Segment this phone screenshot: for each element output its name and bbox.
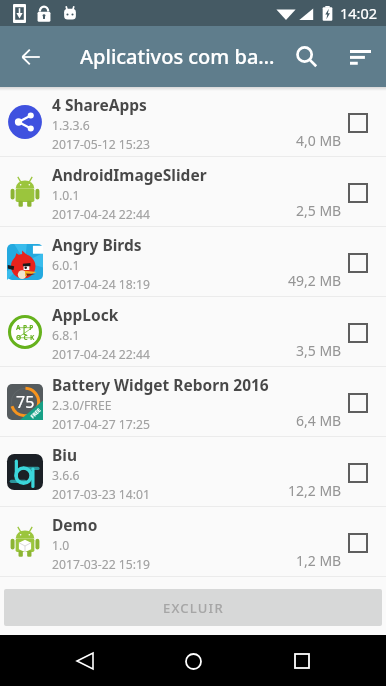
staticText: AppLock — [52, 304, 119, 325]
button[interactable]: Back — [61, 637, 109, 685]
staticText: EXCLUIR — [163, 599, 224, 617]
staticText: 1.0 — [52, 537, 70, 554]
staticText: 2017-05-12 15:23 — [52, 136, 150, 153]
staticText: 2017-04-24 22:44 — [52, 206, 150, 223]
staticText: 4 ShareApps — [52, 94, 147, 115]
staticText: Demo — [52, 514, 98, 535]
staticText: 2017-03-23 14:01 — [52, 486, 150, 503]
button[interactable]: 4 ShareApps — [0, 87, 386, 156]
button[interactable]: EXCLUIR — [4, 589, 382, 626]
staticText: 1,2 MB — [296, 551, 342, 570]
staticText: 12,2 MB — [288, 481, 342, 500]
button[interactable]: Select app — [348, 323, 368, 343]
button[interactable]: Select app — [348, 533, 368, 553]
button[interactable]: Select app — [348, 463, 368, 483]
staticText: OCK — [16, 333, 37, 342]
button[interactable]: Sort — [340, 37, 380, 77]
button[interactable]: APP — [0, 297, 386, 366]
staticText: 2017-04-24 22:44 — [52, 346, 150, 363]
staticText: Aplicativos com ba… — [80, 43, 275, 70]
staticText: FREE — [29, 407, 43, 420]
staticText: 3.6.6 — [52, 467, 80, 484]
staticText: 2017-03-22 15:19 — [52, 556, 150, 573]
button[interactable]: Select app — [348, 183, 368, 203]
staticText: L — [23, 328, 30, 337]
button[interactable]: Select app — [348, 113, 368, 133]
button[interactable]: Angry Birds — [0, 227, 386, 296]
button[interactable]: Select app — [348, 253, 368, 273]
staticText: AndroidImageSlider — [52, 164, 207, 185]
staticText: 1.0.1 — [52, 187, 80, 204]
button[interactable]: AndroidImageSlider — [0, 157, 386, 226]
staticText: APP — [16, 323, 36, 332]
staticText: 4,0 MB — [296, 131, 342, 150]
staticText: 6.0.1 — [52, 257, 80, 274]
staticText: 2.3.0/FREE — [52, 397, 112, 414]
staticText: 14:02 — [340, 3, 378, 23]
staticText: 2017-04-24 18:19 — [52, 276, 150, 293]
button[interactable]: Select app — [348, 393, 368, 413]
button[interactable]: Back — [12, 38, 49, 75]
staticText: 75 — [16, 391, 35, 413]
button[interactable]: Search — [287, 37, 327, 77]
staticText: 49,2 MB — [288, 271, 342, 290]
staticText: Battery Widget Reborn 2016 — [52, 374, 269, 395]
staticText: Angry Birds — [52, 234, 142, 255]
staticText: 2,5 MB — [296, 201, 342, 220]
button[interactable]: Home — [169, 637, 217, 685]
staticText: 6,4 MB — [296, 411, 342, 430]
staticText: Biu — [52, 444, 78, 465]
staticText: 2017-04-27 17:25 — [52, 416, 150, 433]
button[interactable]: Biu — [0, 437, 386, 506]
button[interactable]: 75 — [0, 367, 386, 436]
staticText: 1.3.3.6 — [52, 117, 90, 134]
button[interactable]: Recents — [278, 637, 326, 685]
staticText: 6.8.1 — [52, 327, 80, 344]
staticText: 3,5 MB — [296, 341, 342, 360]
button[interactable]: Demo — [0, 507, 386, 576]
